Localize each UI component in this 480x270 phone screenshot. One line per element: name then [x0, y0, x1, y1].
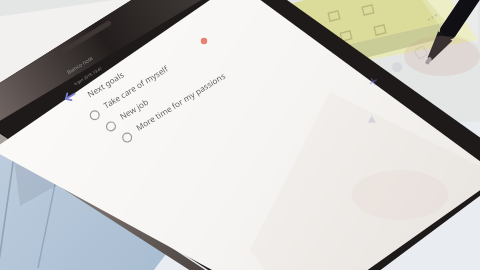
button[interactable]: Back [46, 84, 76, 110]
button[interactable] [104, 130, 244, 162]
button[interactable] [92, 112, 262, 146]
button[interactable] [82, 96, 212, 130]
button[interactable] [66, 72, 176, 100]
